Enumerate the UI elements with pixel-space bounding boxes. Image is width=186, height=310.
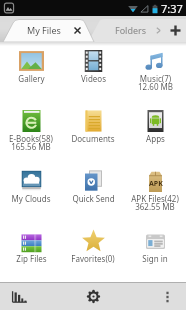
staticText: 7:37 <box>161 1 183 16</box>
button[interactable]: E-Books(58) 165.56 MB <box>0 102 62 162</box>
staticText: Documents <box>71 133 115 144</box>
button[interactable]: Settings <box>62 283 124 310</box>
button[interactable]: Videos <box>62 42 124 102</box>
button[interactable]: Zip Files <box>0 222 62 282</box>
button[interactable]: Favorites(0) <box>62 222 124 282</box>
staticText: My Clouds <box>11 193 51 204</box>
staticText: Favorites(0) <box>71 253 115 264</box>
button[interactable]: Gallery <box>0 42 62 102</box>
staticText: Videos <box>81 73 106 84</box>
staticText: E-Books(58) 165.56 MB <box>9 133 53 152</box>
button[interactable]: My Clouds <box>0 162 62 222</box>
staticText: My Files <box>27 24 61 36</box>
button[interactable]: Quick Send <box>62 162 124 222</box>
staticText: Quick Send <box>72 193 115 204</box>
button[interactable]: Music(7) 12.60 MB <box>124 42 186 102</box>
staticText: Folders <box>115 24 147 36</box>
staticText: Sign in <box>142 253 168 264</box>
button[interactable]: Storage analysis <box>0 283 62 310</box>
button[interactable]: Sign in <box>124 222 186 282</box>
staticText: Gallery <box>18 73 45 84</box>
staticText: Music(7) 12.60 MB <box>138 73 173 92</box>
staticText: APK <box>149 179 163 189</box>
staticText: Apps <box>146 133 165 144</box>
button[interactable]: APK <box>124 162 186 222</box>
staticText: APK Files(42) 362.55 MB <box>131 193 179 212</box>
button[interactable]: Documents <box>62 102 124 162</box>
button[interactable]: Apps <box>124 102 186 162</box>
staticText: Zip Files <box>16 253 47 264</box>
button[interactable]: More options <box>124 283 186 310</box>
